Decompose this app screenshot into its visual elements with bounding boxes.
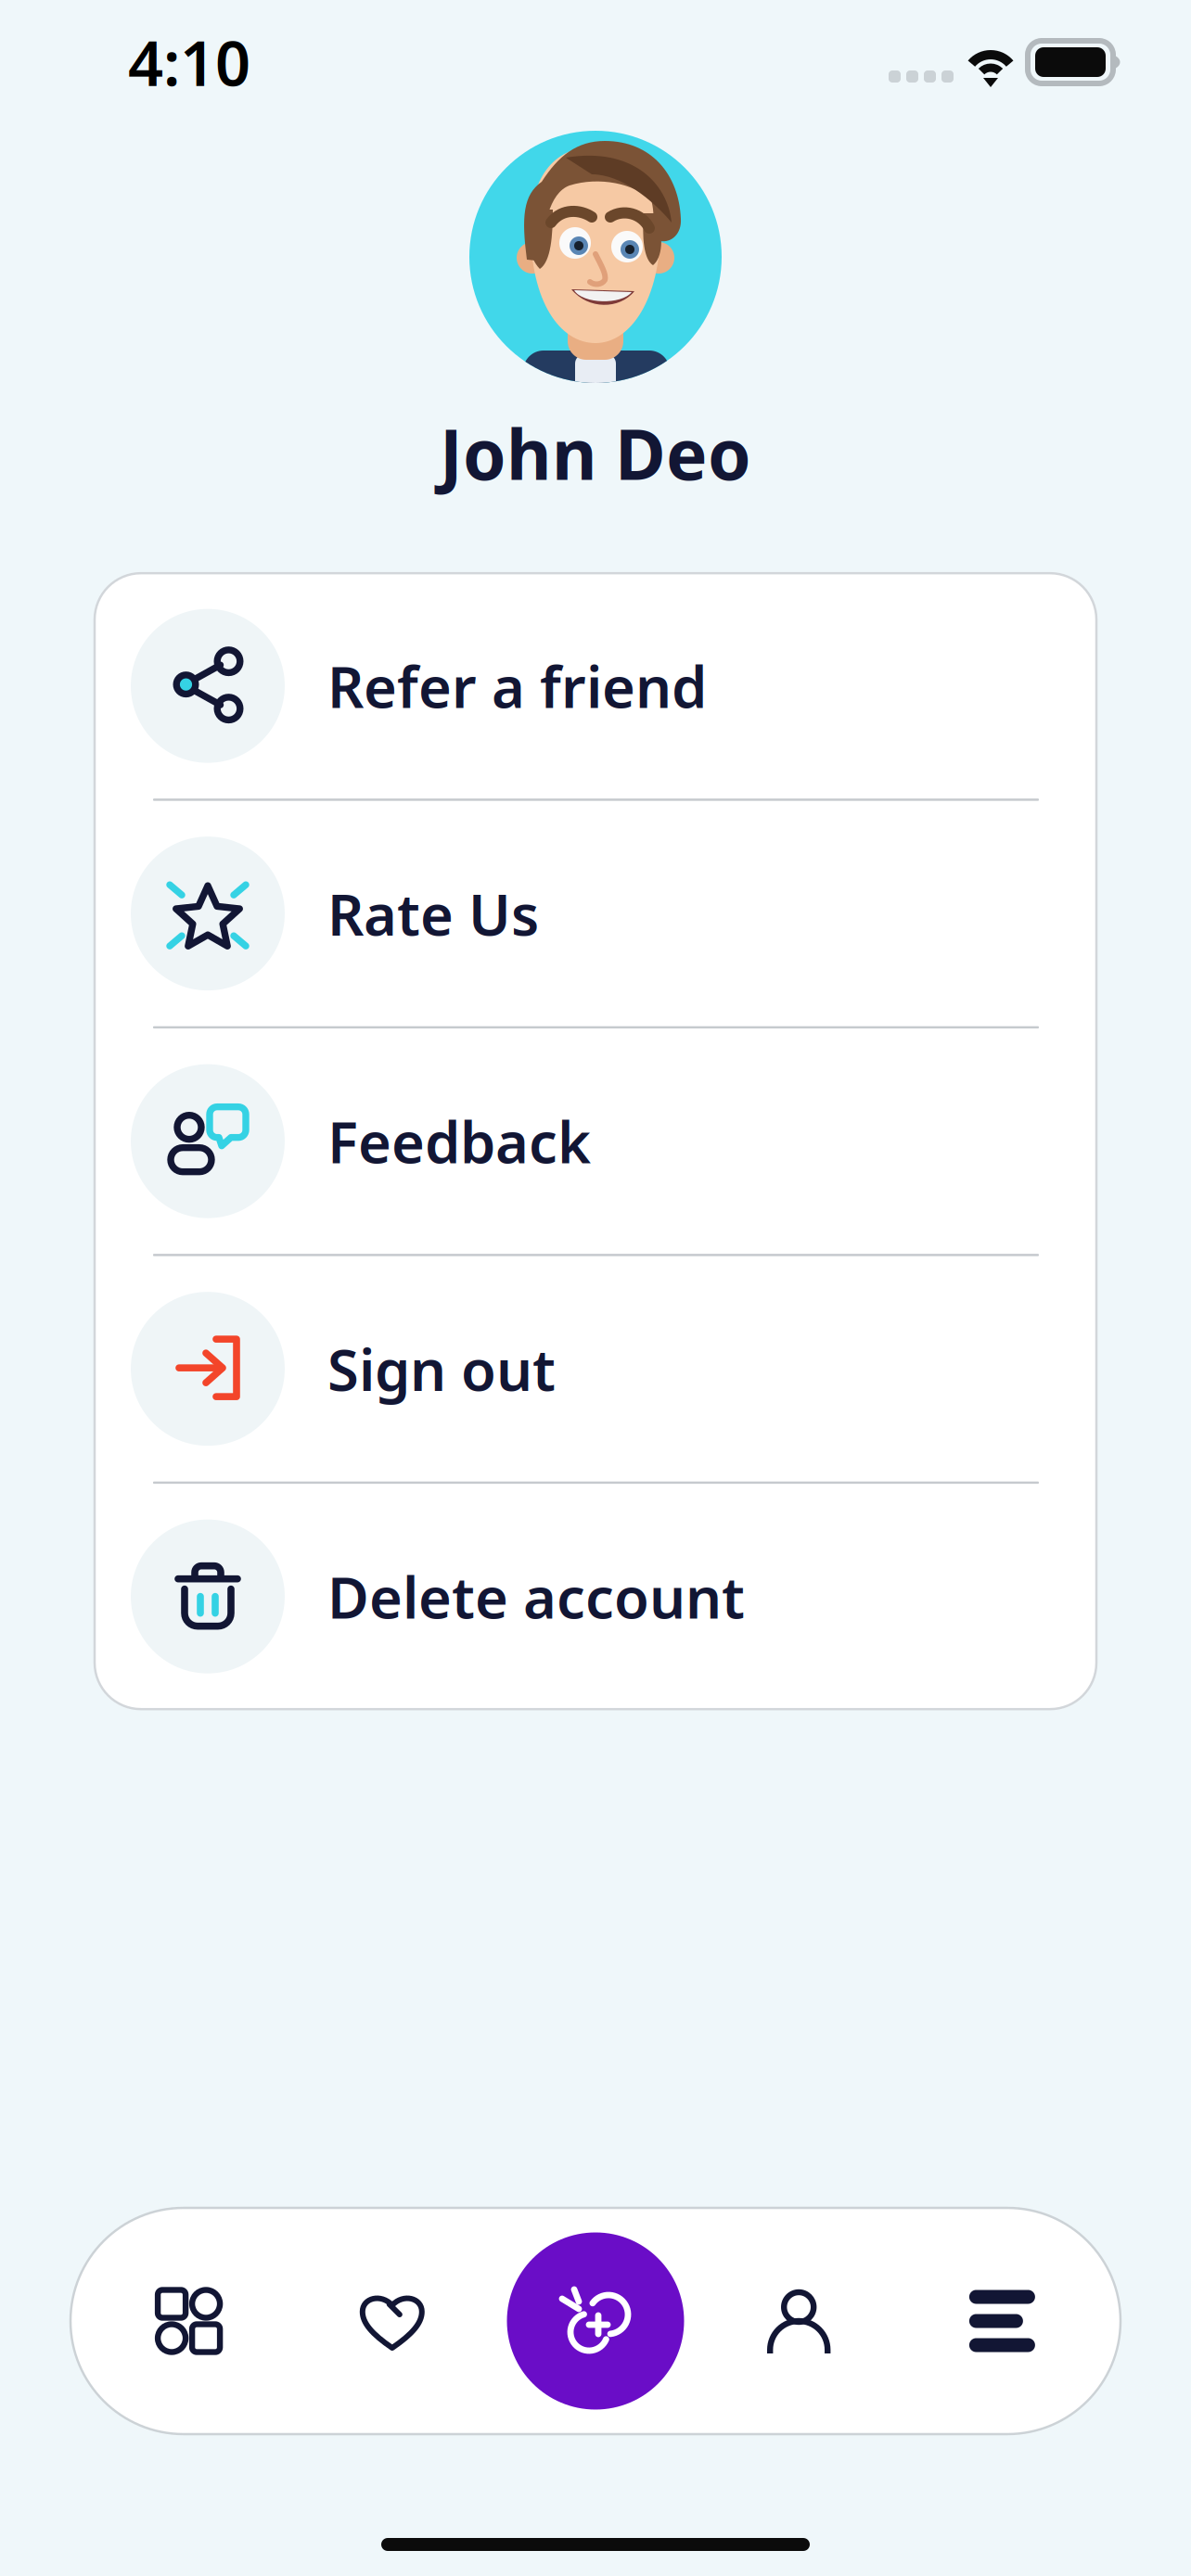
button[interactable]: Profile [697, 2208, 900, 2434]
staticText: Sign out [327, 1331, 556, 1407]
button[interactable]: Dashboard [87, 2208, 291, 2434]
button[interactable]: Delete account [95, 1484, 1096, 1709]
staticText: Refer a friend [327, 648, 707, 724]
staticText: John Deo [440, 407, 751, 499]
button[interactable]: Rate Us [95, 801, 1096, 1026]
button[interactable]: Menu [900, 2208, 1104, 2434]
button[interactable]: Favorites [291, 2208, 494, 2434]
staticText: Delete account [327, 1559, 745, 1634]
button[interactable]: Sign out [95, 1256, 1096, 1482]
button[interactable]: Create [494, 2208, 697, 2434]
button[interactable]: Feedback [95, 1029, 1096, 1254]
staticText: Rate Us [327, 876, 539, 951]
staticText: Feedback [327, 1103, 591, 1179]
staticText: 4:10 [128, 21, 250, 103]
button[interactable]: Refer a friend [95, 573, 1096, 799]
